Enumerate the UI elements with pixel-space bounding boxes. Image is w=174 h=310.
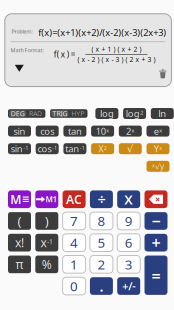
staticText: M: [10, 191, 21, 207]
staticText: %: [42, 256, 52, 272]
staticText: TRIG: [52, 109, 67, 118]
button[interactable]: sin: [8, 126, 31, 137]
staticText: e: [154, 125, 159, 137]
staticText: log: [126, 107, 140, 120]
button[interactable]: 6: [117, 234, 140, 251]
staticText: ln: [158, 107, 166, 120]
staticText: tan: [68, 125, 82, 137]
button[interactable]: Show history: [13, 62, 26, 74]
staticText: f( x ) =: [54, 49, 76, 60]
button[interactable]: +: [144, 234, 167, 251]
button[interactable]: Y: [146, 143, 169, 154]
staticText: ( x - 2 ) ( x - 3 ) ( 2 x + 3 ): [77, 55, 155, 64]
staticText: Problem:: [12, 28, 33, 35]
staticText: +: [151, 232, 160, 253]
button[interactable]: 2: [90, 255, 113, 273]
staticText: DEG: [11, 109, 25, 118]
staticText: 4: [70, 234, 78, 251]
staticText: 8: [97, 212, 105, 230]
staticText: x!: [15, 235, 24, 251]
staticText: =: [151, 265, 160, 286]
button[interactable]: e: [146, 126, 169, 137]
staticText: 2: [140, 109, 143, 116]
button[interactable]: 8: [90, 212, 113, 230]
staticText: 10: [96, 125, 106, 137]
staticText: -1: [80, 144, 85, 151]
staticText: 7: [70, 212, 78, 230]
button[interactable]: (: [8, 212, 31, 230]
button[interactable]: %: [35, 255, 58, 273]
staticText: 3: [125, 255, 133, 273]
button[interactable]: 3: [117, 255, 140, 273]
button[interactable]: 2: [119, 126, 142, 137]
staticText: x: [159, 144, 162, 151]
staticText: f(x)=(x+1)(x+2)/(x-2)(x-3)(2x+3): [38, 26, 166, 39]
button[interactable]: ˣ√y: [146, 161, 169, 172]
staticText: x: [40, 235, 46, 251]
button[interactable]: sin: [8, 143, 31, 154]
staticText: ): [45, 212, 49, 230]
staticText: 0: [70, 277, 78, 295]
staticText: Y: [154, 142, 159, 155]
button[interactable]: X: [91, 143, 114, 154]
button[interactable]: 5: [90, 234, 113, 251]
button[interactable]: ÷: [90, 190, 113, 208]
staticText: ˣ√y: [152, 161, 164, 172]
button[interactable]: Memory list: [8, 190, 31, 208]
button[interactable]: −: [144, 212, 167, 230]
staticText: ( x + 1 ) ( x + 2 ): [91, 45, 141, 54]
staticText: sin: [13, 125, 25, 137]
button[interactable]: ): [35, 212, 58, 230]
button[interactable]: cos: [36, 143, 59, 154]
staticText: √: [127, 143, 134, 155]
button[interactable]: Store to memory 1: [35, 190, 58, 208]
staticText: ×: [155, 193, 160, 205]
button[interactable]: √: [119, 143, 142, 154]
button[interactable]: 9: [117, 212, 140, 230]
staticText: cos: [40, 125, 54, 137]
staticText: log: [100, 107, 114, 120]
staticText: x: [106, 127, 109, 134]
button[interactable]: AC: [63, 190, 86, 208]
button[interactable]: cos: [36, 126, 59, 137]
button[interactable]: Clear: [157, 68, 169, 80]
button[interactable]: x!: [8, 234, 31, 251]
button[interactable]: =: [144, 255, 167, 295]
staticText: cos: [37, 142, 51, 155]
staticText: HYP: [71, 109, 84, 118]
button[interactable]: π: [8, 255, 31, 273]
staticText: -1: [52, 144, 57, 151]
staticText: X: [98, 142, 103, 155]
button[interactable]: 0: [63, 277, 86, 295]
staticText: 2: [97, 255, 105, 273]
button[interactable]: X: [117, 190, 140, 208]
staticText: −: [151, 210, 160, 231]
staticText: 2: [126, 125, 131, 137]
button[interactable]: 1: [63, 255, 86, 273]
button[interactable]: tan: [63, 143, 86, 154]
button[interactable]: DEG: [8, 108, 45, 119]
staticText: sin: [11, 142, 23, 155]
button[interactable]: .: [90, 277, 113, 295]
staticText: -1: [23, 144, 28, 151]
button[interactable]: x: [35, 234, 58, 251]
staticText: 6: [125, 234, 133, 251]
button[interactable]: 4: [63, 234, 86, 251]
staticText: 2: [104, 144, 107, 151]
staticText: tan: [65, 142, 79, 155]
staticText: (: [17, 212, 21, 230]
button[interactable]: +/-: [117, 277, 140, 295]
button[interactable]: 7: [63, 212, 86, 230]
staticText: RAD: [29, 109, 42, 118]
button[interactable]: tan: [63, 126, 86, 137]
staticText: .: [99, 276, 103, 296]
button[interactable]: 10: [91, 126, 114, 137]
staticText: 9: [125, 212, 133, 230]
button[interactable]: log: [95, 108, 118, 119]
button[interactable]: TRIG: [50, 108, 87, 119]
button[interactable]: log: [123, 108, 146, 119]
button[interactable]: Backspace: [144, 190, 167, 208]
button[interactable]: ln: [151, 108, 174, 119]
staticText: x: [132, 127, 135, 134]
staticText: +/-: [122, 279, 135, 293]
